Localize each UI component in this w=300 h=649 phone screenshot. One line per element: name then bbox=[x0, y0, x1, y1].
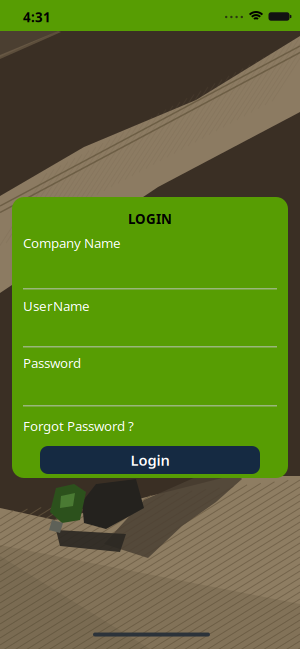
button[interactable]: Login bbox=[40, 446, 260, 474]
staticText: LOGIN bbox=[128, 210, 172, 228]
staticText: Forgot Password ? bbox=[23, 417, 134, 435]
staticText: Login bbox=[130, 450, 169, 470]
staticText: Password bbox=[23, 354, 81, 372]
staticText: 4:31 bbox=[23, 8, 51, 26]
staticText: UserName bbox=[23, 297, 90, 315]
button[interactable]: Forgot Password ? bbox=[23, 417, 134, 435]
staticText: Company Name bbox=[23, 234, 121, 252]
